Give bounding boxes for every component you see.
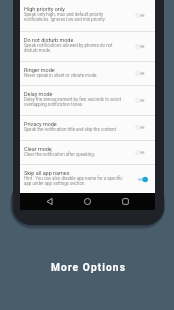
staticText: app under app settings section. [24, 181, 86, 186]
button[interactable]: Toggle setting [135, 175, 148, 184]
staticText: Skip all app names [24, 170, 70, 176]
button[interactable]: Toggle setting [135, 69, 148, 78]
staticText: More Options [51, 262, 126, 274]
staticText: Clear mode [24, 146, 52, 152]
staticText: Speak the notification title and skip th… [24, 127, 117, 132]
staticText: Speak only high, max and default priorit… [24, 12, 104, 17]
button[interactable]: Recent apps [118, 193, 132, 210]
button[interactable]: Toggle setting [135, 11, 148, 20]
staticText: Clear the notification after speaking. [24, 152, 95, 157]
button[interactable]: Ringer mode [20, 61, 155, 85]
button[interactable]: Toggle setting [135, 96, 148, 105]
button[interactable]: Clear mode [20, 140, 155, 164]
staticText: Ringer mode [24, 67, 55, 73]
button[interactable]: Privacy mode [20, 115, 155, 140]
staticText: Delay mode [24, 91, 53, 97]
button[interactable]: Skip all app names [20, 164, 155, 194]
button[interactable]: Toggle setting [135, 123, 148, 132]
staticText: Never speak in silent or vibrate mode. [24, 73, 98, 78]
staticText: disturb mode. [24, 48, 52, 53]
button[interactable]: High priority only [20, 0, 155, 31]
staticText: Privacy mode [24, 121, 57, 127]
staticText: overlapping notification tones. [24, 102, 84, 107]
staticText: Do not disturb mode [24, 37, 74, 43]
staticText: Hint : You can also disable app name for… [24, 176, 123, 181]
staticText: High priority only [24, 6, 65, 12]
staticText: Speak notifications allowed by phones do… [24, 43, 113, 48]
button[interactable]: Do not disturb mode [20, 31, 155, 61]
staticText: Delay the announcement by few seconds to… [24, 97, 121, 102]
button[interactable]: Delay mode [20, 85, 155, 115]
staticText: notifications. Ignores low and min prior… [24, 17, 106, 22]
button[interactable]: Back [42, 193, 56, 210]
button[interactable]: Toggle setting [135, 148, 148, 157]
button[interactable]: Home [80, 193, 94, 210]
button[interactable]: Toggle setting [135, 42, 148, 51]
